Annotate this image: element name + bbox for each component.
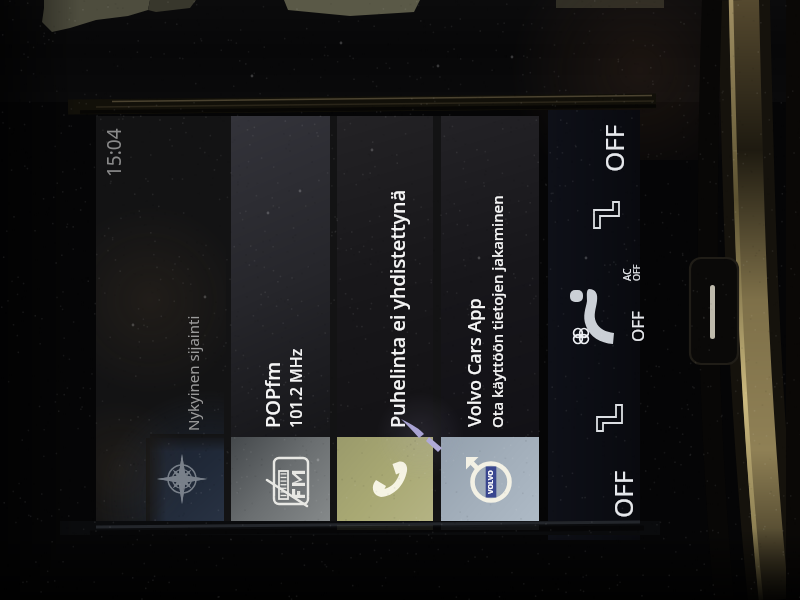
button[interactable]: Climate controls: [553, 116, 637, 536]
button[interactable]: POPfm 101.2 MHz radio: [231, 116, 330, 524]
button[interactable]: Volvo Cars App: [441, 116, 539, 524]
button[interactable]: Puhelin, puhelinta ei yhdistettyna: [337, 116, 433, 524]
button[interactable]: Navigation, Nykyinen sijainti: [96, 116, 224, 524]
